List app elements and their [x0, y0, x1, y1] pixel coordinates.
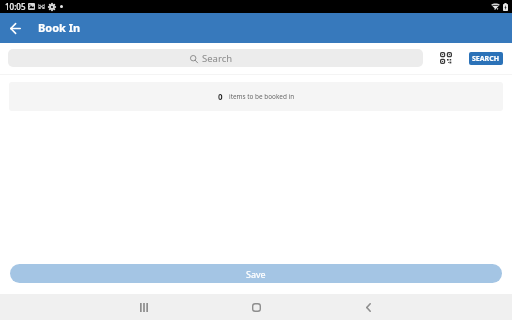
button[interactable]: Back — [0, 13, 30, 43]
button[interactable]: Recent apps — [88, 294, 200, 320]
staticText: Book In — [38, 20, 81, 35]
button[interactable]: Back — [312, 294, 424, 320]
button[interactable]: Save — [10, 264, 502, 283]
staticText: 0 — [218, 91, 223, 102]
button[interactable]: 0 — [9, 82, 503, 111]
staticText: Search — [202, 52, 233, 65]
button[interactable]: SEARCH — [469, 52, 503, 65]
button[interactable]: Scan barcode — [438, 50, 454, 66]
staticText: items to be booked in — [229, 92, 295, 101]
button[interactable]: Home — [200, 294, 312, 320]
staticText: Save — [246, 268, 266, 280]
staticText: 10:05 — [5, 1, 26, 12]
button[interactable]: Search — [8, 49, 423, 67]
staticText: SEARCH — [472, 54, 500, 64]
